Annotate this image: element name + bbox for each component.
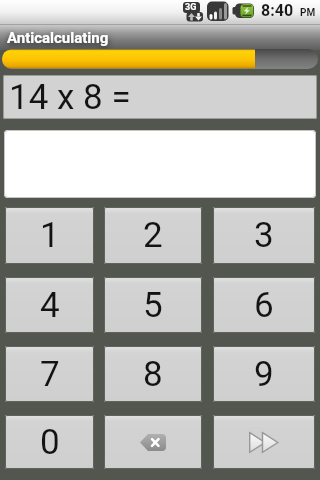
button[interactable]: 0: [5, 415, 94, 469]
button[interactable]: 2: [104, 207, 202, 264]
button[interactable]: 9: [213, 346, 315, 402]
staticText: 14 x 8 =: [9, 77, 131, 118]
staticText: 3: [254, 215, 274, 256]
staticText: 5: [143, 285, 163, 326]
staticText: Anticalculating: [7, 29, 109, 47]
staticText: PM: [300, 7, 316, 19]
staticText: 6: [254, 285, 274, 326]
button[interactable]: [4, 130, 316, 198]
button[interactable]: 3: [213, 207, 315, 264]
button[interactable]: [213, 415, 315, 469]
staticText: 9: [254, 354, 274, 395]
button[interactable]: 7: [5, 346, 94, 402]
staticText: 0: [40, 422, 60, 463]
button[interactable]: 8: [104, 346, 202, 402]
button[interactable]: 4: [5, 277, 94, 333]
button[interactable]: 1: [5, 207, 94, 264]
staticText: 8: [143, 354, 163, 395]
staticText: 2: [143, 215, 163, 256]
staticText: 1: [40, 215, 60, 256]
staticText: 7: [40, 354, 60, 395]
staticText: 4: [40, 285, 60, 326]
button[interactable]: [104, 415, 202, 469]
button[interactable]: 5: [104, 277, 202, 333]
button[interactable]: 6: [213, 277, 315, 333]
staticText: 8:40: [261, 1, 294, 20]
staticText: 3G: [185, 2, 197, 13]
